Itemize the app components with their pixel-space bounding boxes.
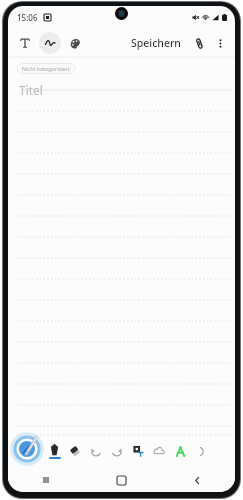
- staticText: 15:06: [17, 12, 38, 23]
- button[interactable]: Redo: [107, 441, 127, 461]
- button[interactable]: Pen: [44, 438, 64, 464]
- staticText: Nicht kategorisiert: [22, 65, 70, 72]
- button[interactable]: Text mode: [14, 32, 36, 54]
- button[interactable]: Recent apps: [8, 468, 83, 492]
- button[interactable]: Home: [83, 468, 159, 492]
- button[interactable]: Back: [159, 468, 235, 492]
- button[interactable]: S Pen air command: [10, 432, 44, 466]
- button[interactable]: Speichern: [128, 33, 184, 53]
- button[interactable]: More tools: [191, 442, 209, 460]
- button[interactable]: Cloud sync: [149, 441, 169, 461]
- button[interactable]: Assistant: [170, 441, 190, 461]
- button[interactable]: Handwriting mode: [39, 32, 61, 54]
- staticText: Speichern: [131, 36, 181, 50]
- button[interactable]: Attach: [189, 33, 209, 53]
- button[interactable]: More options: [210, 33, 230, 53]
- button[interactable]: Undo: [86, 441, 106, 461]
- button[interactable]: Nicht kategorisiert: [17, 63, 75, 74]
- button[interactable]: Convert handwriting to text: [128, 441, 148, 461]
- button[interactable]: Eraser: [65, 441, 85, 461]
- button[interactable]: Drawing styles: [64, 32, 86, 54]
- staticText: Titel: [19, 82, 43, 98]
